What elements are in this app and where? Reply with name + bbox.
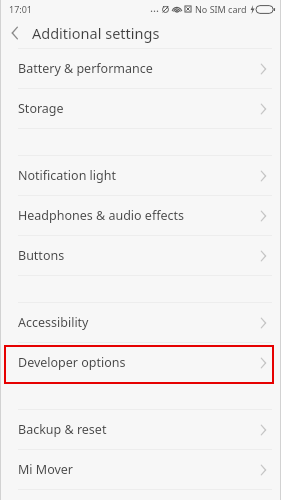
- button[interactable]: Mi Mover: [0, 450, 281, 489]
- button[interactable]: Accessibility: [0, 303, 281, 342]
- staticText: Accessibility: [18, 314, 260, 331]
- staticText: Backup & reset: [18, 421, 260, 438]
- button[interactable]: Back: [0, 18, 30, 48]
- staticText: Notification light: [18, 167, 260, 184]
- button[interactable]: Backup & reset: [0, 410, 281, 449]
- staticText: Headphones & audio effects: [18, 207, 260, 224]
- staticText: Storage: [18, 100, 260, 117]
- staticText: Buttons: [18, 247, 260, 264]
- button[interactable]: Headphones & audio effects: [0, 196, 281, 235]
- staticText: Battery & performance: [18, 60, 260, 77]
- button[interactable]: Buttons: [0, 236, 281, 275]
- staticText: Developer options: [18, 354, 260, 371]
- button[interactable]: Notification light: [0, 156, 281, 195]
- staticText: 17:01: [9, 3, 33, 15]
- staticText: No SIM card: [195, 3, 247, 15]
- button[interactable]: Developer options: [0, 343, 281, 382]
- staticText: Additional settings: [32, 23, 160, 43]
- button[interactable]: Storage: [0, 89, 281, 128]
- staticText: Mi Mover: [18, 461, 260, 478]
- button[interactable]: Battery & performance: [0, 49, 281, 88]
